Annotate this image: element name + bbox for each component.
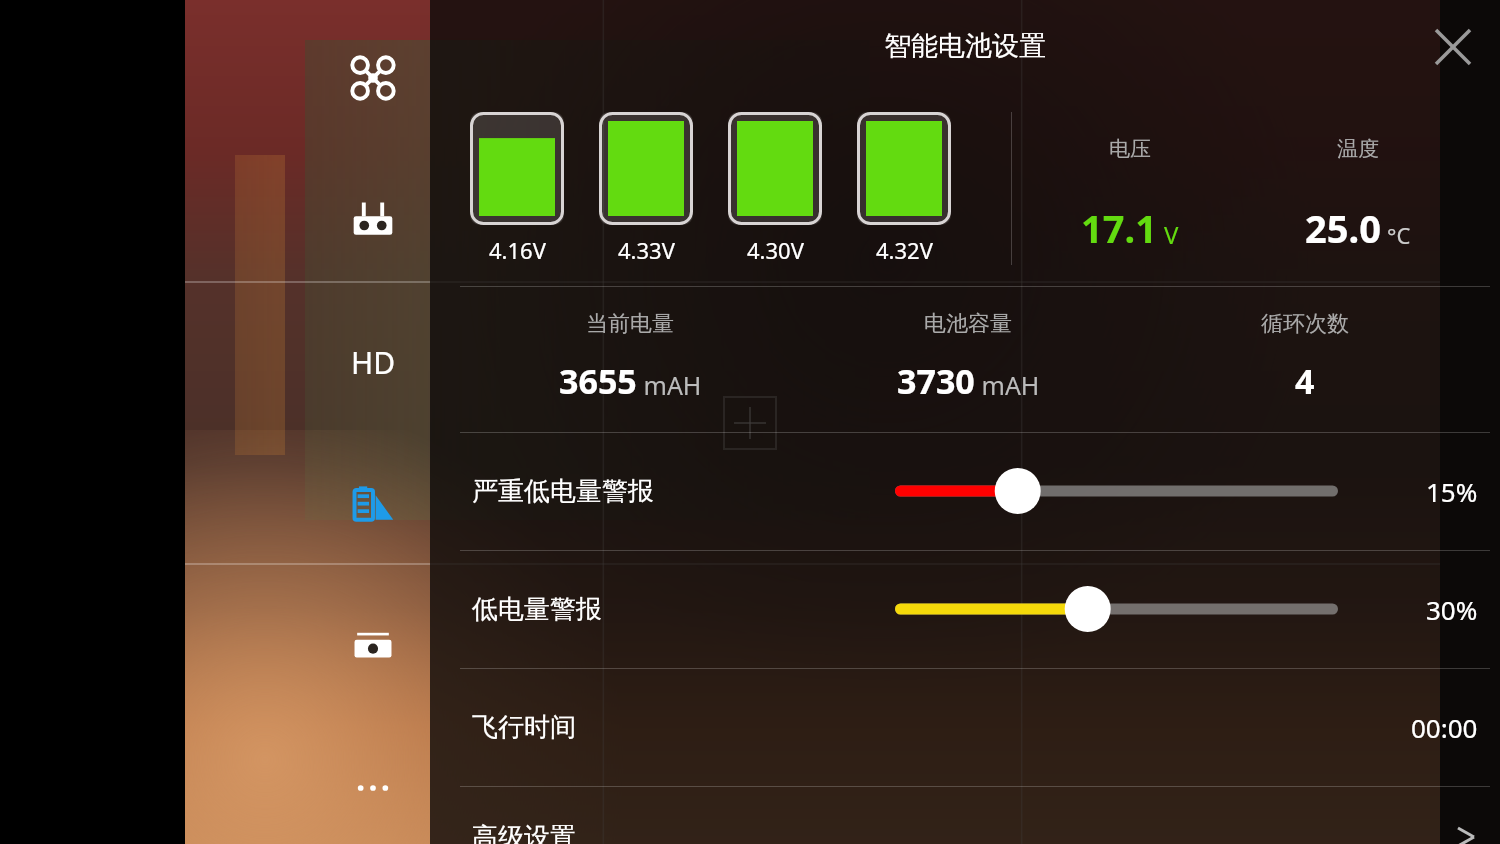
staticText: 电池容量 [924,310,1012,338]
staticText: 温度 [1337,136,1379,162]
button[interactable]: Menu [333,38,413,118]
button[interactable]: Menu [333,180,413,260]
staticText: 4 [1295,358,1315,404]
staticText: 4.16V [489,235,546,265]
button[interactable]: 飞行时间 [460,668,1490,786]
staticText: 4.32V [876,235,933,265]
staticText: °C [1387,220,1411,250]
staticText: 当前电量 [586,310,674,338]
button[interactable]: 低电量警报 [460,550,1490,668]
staticText: 飞行时间 [472,711,576,744]
staticText: 00:00 [1411,710,1478,745]
staticText: mAH [637,368,702,402]
staticText: 智能电池设置 [884,29,1046,63]
staticText: 高级设置 [472,821,576,844]
staticText: 17.1 [1081,202,1157,254]
button[interactable] [857,112,951,225]
staticText: 15% [1426,474,1478,509]
button[interactable]: Close [1420,14,1486,80]
staticText: 4.33V [618,235,675,265]
staticText: 低电量警报 [472,593,602,626]
staticText: 循环次数 [1261,310,1349,338]
button[interactable]: Menu [333,748,413,828]
button[interactable]: 严重低电量警报 [460,432,1490,550]
staticText: 30% [1426,592,1478,627]
staticText: 严重低电量警报 [472,475,654,508]
button[interactable] [728,112,822,225]
button[interactable]: 高级设置 [460,786,1490,844]
staticText: 3730 [897,358,975,404]
button[interactable] [470,112,564,225]
staticText: 电压 [1109,136,1151,162]
button[interactable]: Menu [333,606,413,686]
staticText: 3655 [559,358,637,404]
staticText: mAH [975,368,1040,402]
staticText: 4.30V [747,235,804,265]
button[interactable]: Menu [333,322,413,402]
staticText: V [1164,218,1179,251]
staticText: 25.0 [1305,202,1381,254]
button[interactable]: Menu [333,464,413,544]
button[interactable] [599,112,693,225]
staticText: HD [351,342,396,383]
